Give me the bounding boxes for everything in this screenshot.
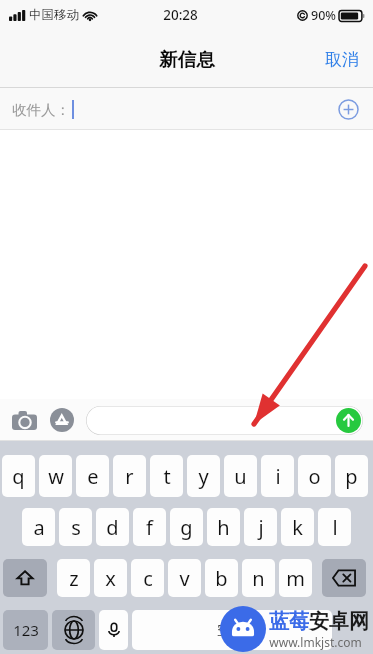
button[interactable]: z bbox=[57, 559, 90, 597]
button[interactable]: x bbox=[94, 559, 127, 597]
staticText: 90% bbox=[311, 7, 336, 24]
button[interactable]: q bbox=[2, 455, 35, 497]
staticText: e bbox=[87, 463, 99, 490]
button[interactable]: h bbox=[207, 508, 240, 546]
staticText: f bbox=[146, 514, 153, 541]
staticText: i bbox=[275, 463, 281, 490]
staticText: r bbox=[125, 463, 134, 490]
button[interactable]: Delete bbox=[322, 559, 366, 597]
button[interactable]: j bbox=[244, 508, 277, 546]
button[interactable]: n bbox=[242, 559, 275, 597]
staticText: g bbox=[180, 514, 193, 541]
staticText: d bbox=[106, 514, 119, 541]
staticText: 中国移动 bbox=[29, 7, 79, 23]
button[interactable]: Camera bbox=[8, 404, 40, 436]
button[interactable]: y bbox=[187, 455, 220, 497]
button[interactable]: m bbox=[279, 559, 312, 597]
button[interactable]: 空格 bbox=[132, 610, 332, 650]
staticText: s bbox=[71, 514, 81, 541]
staticText: c bbox=[143, 565, 153, 592]
staticText: h bbox=[217, 514, 230, 541]
button[interactable]: r bbox=[113, 455, 146, 497]
staticText: 123 bbox=[13, 620, 39, 640]
staticText: 蓝莓 bbox=[269, 609, 309, 634]
staticText: y bbox=[198, 463, 209, 490]
staticText: a bbox=[33, 514, 45, 541]
staticText: z bbox=[69, 565, 79, 592]
button[interactable]: 取消 bbox=[311, 41, 373, 78]
button[interactable]: v bbox=[168, 559, 201, 597]
staticText: 收件人： bbox=[12, 101, 70, 119]
button[interactable]: t bbox=[150, 455, 183, 497]
staticText: w bbox=[48, 463, 64, 490]
staticText: u bbox=[234, 463, 247, 490]
button[interactable]: Dictate bbox=[99, 610, 128, 650]
button[interactable]: 123 bbox=[3, 610, 48, 650]
button[interactable]: l bbox=[318, 508, 351, 546]
button[interactable]: i bbox=[261, 455, 294, 497]
button[interactable]: u bbox=[224, 455, 257, 497]
staticText: k bbox=[292, 514, 303, 541]
staticText: t bbox=[163, 463, 171, 490]
button[interactable]: Add contact bbox=[334, 95, 362, 123]
button[interactable]: 收件人： bbox=[0, 88, 373, 130]
staticText: 20:28 bbox=[163, 6, 198, 24]
button[interactable]: Send bbox=[86, 406, 363, 435]
button[interactable]: f bbox=[133, 508, 166, 546]
staticText: m bbox=[286, 565, 305, 592]
button[interactable]: c bbox=[131, 559, 164, 597]
staticText: b bbox=[215, 565, 228, 592]
button[interactable]: k bbox=[281, 508, 314, 546]
staticText: www.lmkjst.com bbox=[269, 634, 362, 650]
staticText: x bbox=[105, 565, 116, 592]
staticText: 取消 bbox=[325, 49, 359, 70]
button[interactable]: Shift bbox=[3, 559, 47, 597]
button[interactable]: d bbox=[96, 508, 129, 546]
button[interactable]: Send bbox=[336, 408, 361, 433]
staticText: o bbox=[308, 463, 321, 490]
button[interactable]: o bbox=[298, 455, 331, 497]
button[interactable]: p bbox=[335, 455, 368, 497]
button[interactable]: s bbox=[59, 508, 92, 546]
staticText: 空格 bbox=[217, 621, 247, 640]
button[interactable]: App Store bbox=[46, 404, 78, 436]
button[interactable]: a bbox=[22, 508, 55, 546]
button[interactable]: b bbox=[205, 559, 238, 597]
staticText: 新信息 bbox=[159, 48, 215, 71]
staticText: v bbox=[179, 565, 190, 592]
staticText: j bbox=[258, 514, 264, 541]
staticText: p bbox=[345, 463, 358, 490]
staticText: q bbox=[12, 463, 25, 490]
staticText: l bbox=[332, 514, 338, 541]
button[interactable]: Language bbox=[52, 610, 95, 650]
staticText: 安卓网 bbox=[309, 609, 369, 634]
button[interactable]: w bbox=[39, 455, 72, 497]
button[interactable]: e bbox=[76, 455, 109, 497]
staticText: n bbox=[252, 565, 265, 592]
button[interactable]: g bbox=[170, 508, 203, 546]
